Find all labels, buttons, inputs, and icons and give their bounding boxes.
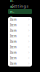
staticText: Item: [10, 56, 16, 60]
staticText: >: [28, 45, 30, 49]
staticText: >: [28, 51, 30, 54]
staticText: Settings: [11, 3, 28, 9]
staticText: >: [28, 62, 30, 65]
staticText: >: [28, 40, 30, 43]
staticText: >: [28, 34, 30, 38]
staticText: >: [28, 18, 30, 21]
staticText: Item: [10, 62, 16, 65]
staticText: Banner: [10, 0, 14, 25]
staticText: Item: [10, 18, 16, 21]
staticText: >: [28, 23, 30, 27]
staticText: Item: [10, 29, 16, 32]
staticText: >: [28, 56, 30, 60]
staticText: Item: [10, 51, 16, 54]
staticText: Item: [10, 34, 16, 38]
staticText: >: [28, 29, 30, 32]
staticText: Item: [10, 23, 16, 27]
staticText: Item: [10, 40, 16, 43]
staticText: Item: [10, 45, 16, 49]
